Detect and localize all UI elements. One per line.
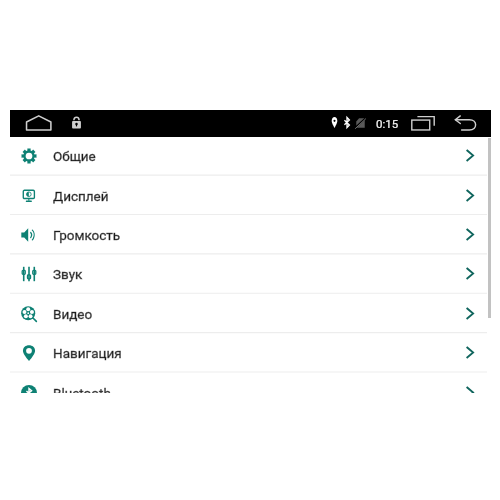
staticText: Bluetooth: [53, 385, 111, 401]
button[interactable]: Общие: [10, 136, 487, 175]
staticText: Громкость: [53, 227, 121, 243]
button[interactable]: Видео: [10, 294, 487, 333]
button[interactable]: Bluetooth: [10, 373, 487, 412]
staticText: Общие: [53, 148, 96, 164]
staticText: Звук: [53, 266, 83, 282]
button[interactable]: Громкость: [10, 215, 487, 254]
staticText: Навигация: [53, 345, 122, 361]
button[interactable]: Lock: [70, 115, 83, 132]
staticText: Общие: [53, 148, 96, 164]
button[interactable]: Навигация: [10, 333, 487, 372]
staticText: Дисплей: [53, 188, 109, 204]
staticText: Дисплей: [53, 188, 109, 204]
button[interactable]: Home: [25, 115, 53, 132]
button[interactable]: Дисплей: [10, 176, 487, 215]
staticText: Громкость: [53, 227, 121, 243]
button[interactable]: Back: [453, 114, 479, 133]
button[interactable]: Recent apps: [409, 114, 437, 133]
staticText: Видео: [53, 306, 93, 322]
staticText: Звук: [53, 266, 83, 282]
staticText: Bluetooth: [53, 385, 111, 401]
button[interactable]: Звук: [10, 254, 487, 293]
staticText: Видео: [53, 306, 93, 322]
staticText: 0:15: [376, 117, 399, 130]
staticText: Навигация: [53, 345, 122, 361]
